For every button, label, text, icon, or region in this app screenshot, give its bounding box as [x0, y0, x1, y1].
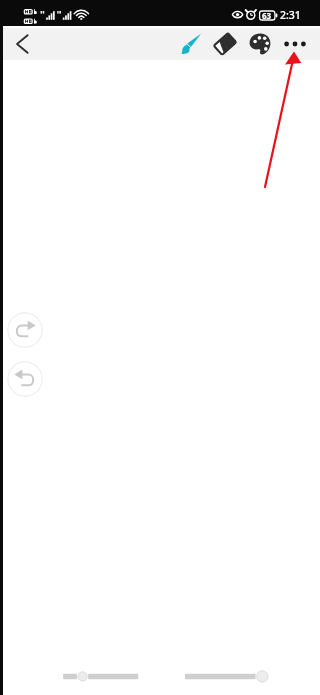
- button[interactable]: Undo: [7, 361, 43, 397]
- button[interactable]: Eraser: [209, 28, 241, 60]
- staticText: 2:31: [280, 8, 301, 22]
- button[interactable]: Brush: [175, 28, 207, 60]
- button[interactable]: Brush size: [58, 667, 144, 686]
- button[interactable]: Opacity: [180, 667, 270, 686]
- button[interactable]: More options: [279, 28, 311, 60]
- staticText: 63: [262, 10, 272, 21]
- button[interactable]: Color palette: [244, 28, 276, 60]
- button[interactable]: Redo: [7, 312, 43, 348]
- button[interactable]: Back: [4, 28, 38, 60]
